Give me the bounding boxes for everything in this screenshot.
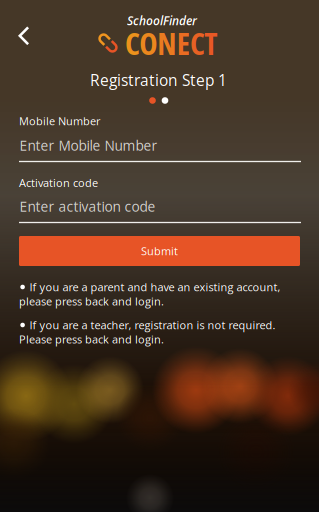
staticText: If you are a teacher, registration is no… bbox=[29, 317, 275, 332]
staticText: Enter activation code bbox=[19, 197, 155, 216]
staticText: Registration Step 1 bbox=[90, 69, 227, 90]
staticText: T bbox=[204, 22, 217, 64]
staticText: Mobile Number bbox=[19, 113, 100, 128]
staticText: C bbox=[190, 22, 205, 64]
staticText: E bbox=[177, 22, 190, 64]
staticText: If you are a parent and have an existing… bbox=[29, 279, 280, 294]
staticText: please press back and login. bbox=[19, 294, 164, 309]
staticText: Activation code bbox=[19, 175, 98, 190]
staticText: C bbox=[125, 22, 140, 64]
staticText: SchoolFinder bbox=[127, 12, 197, 29]
button[interactable]: Back bbox=[3, 16, 43, 56]
button[interactable]: Submit bbox=[19, 236, 300, 266]
staticText: O bbox=[139, 22, 157, 64]
staticText: Submit bbox=[141, 243, 178, 258]
staticText: Please press back and login. bbox=[19, 332, 164, 347]
staticText: N bbox=[157, 22, 176, 64]
staticText: Enter Mobile Number bbox=[19, 136, 157, 155]
